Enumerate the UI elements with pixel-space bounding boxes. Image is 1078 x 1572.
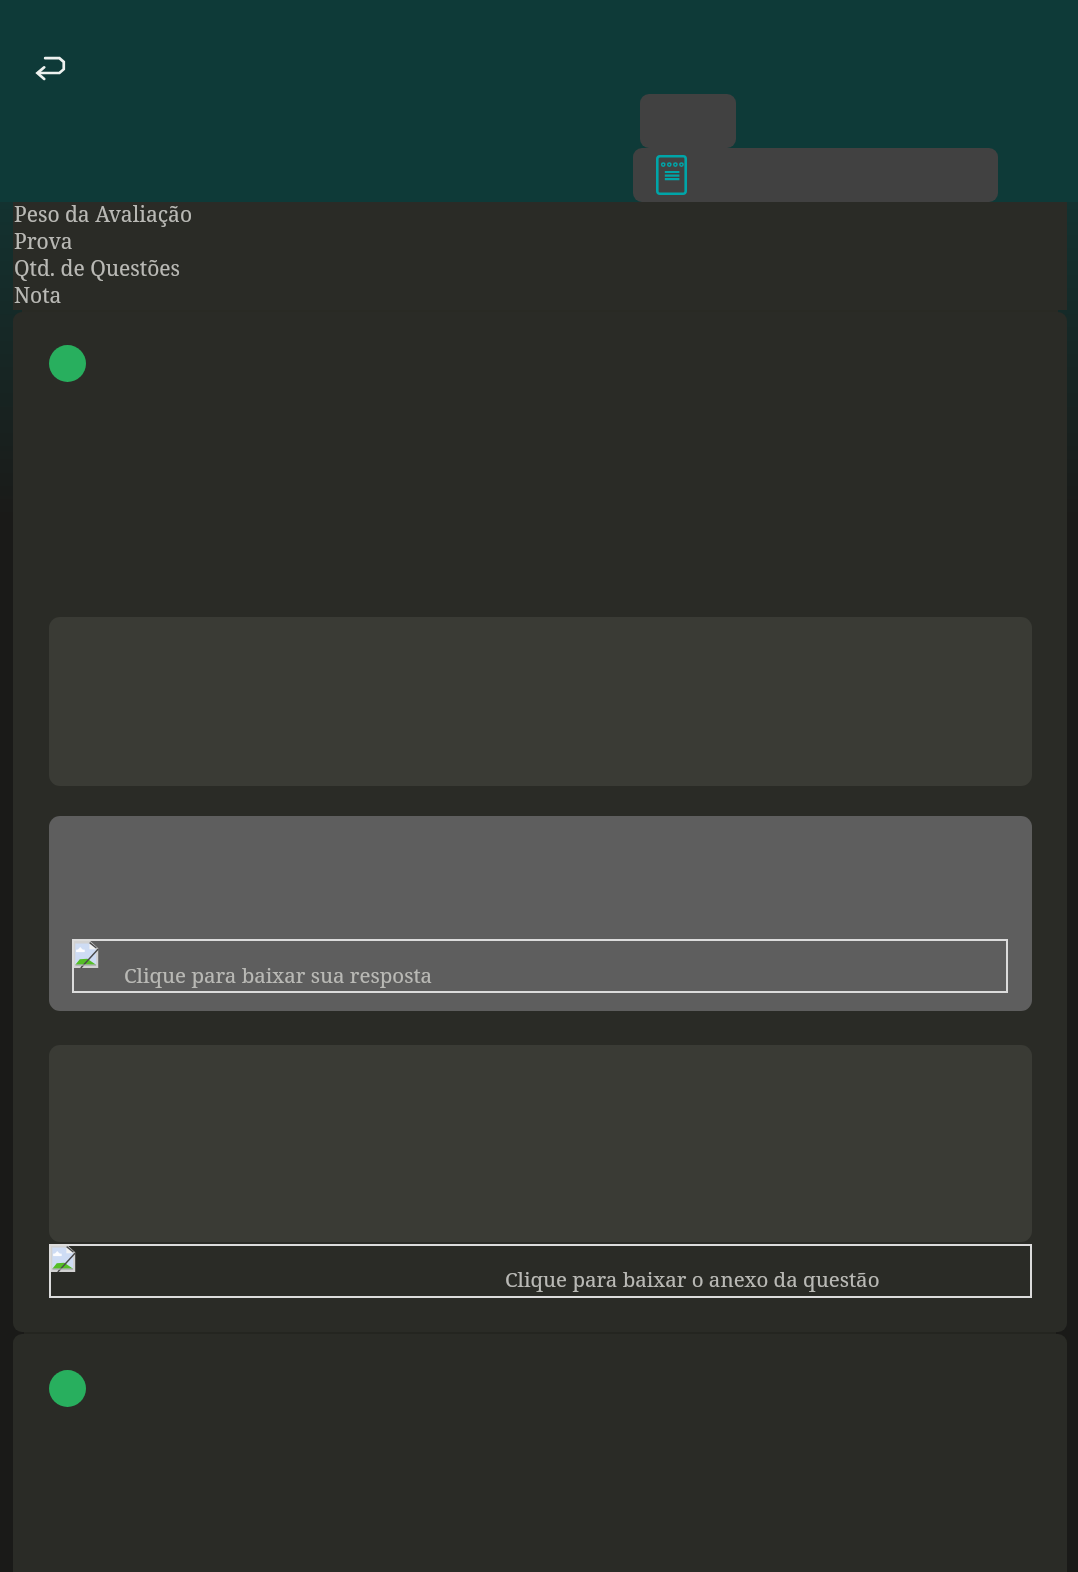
staticText: Clique para baixar o anexo da questão <box>505 1265 880 1293</box>
button[interactable]: Back <box>34 53 65 80</box>
staticText: Clique para baixar sua resposta <box>124 961 433 989</box>
button[interactable]: Clique para baixar sua resposta <box>72 939 1008 993</box>
staticText: Prova <box>14 227 73 256</box>
button[interactable]: Menu <box>640 94 736 148</box>
staticText: Nota <box>14 281 62 310</box>
staticText: Qtd. de Questões <box>14 254 181 283</box>
button[interactable]: Notes <box>633 148 998 202</box>
button[interactable]: Clique para baixar o anexo da questão <box>49 1244 1032 1298</box>
staticText: Peso da Avaliação <box>14 200 192 229</box>
